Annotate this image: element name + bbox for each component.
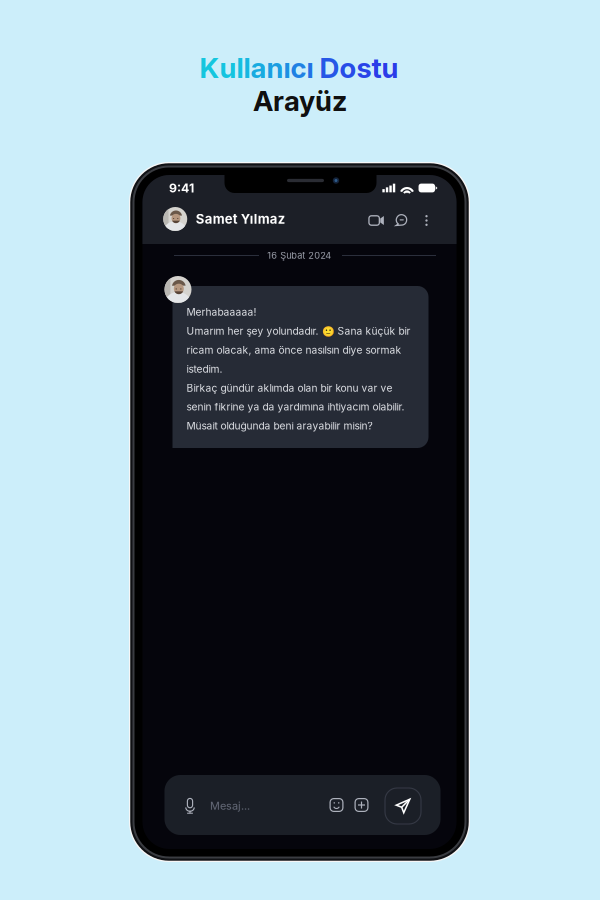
staticText: s: [356, 51, 371, 85]
staticText: K: [199, 51, 219, 85]
staticText: o: [339, 51, 356, 85]
staticText: u: [381, 51, 398, 85]
staticText: 9:41: [169, 181, 194, 195]
staticText: c: [290, 51, 306, 85]
button[interactable]: Emoji: [327, 795, 345, 815]
staticText: ı: [283, 51, 290, 85]
button[interactable]: Video call: [365, 210, 387, 230]
staticText: 16 Şubat 2024: [267, 250, 331, 261]
staticText: Samet Yılmaz: [196, 211, 285, 227]
staticText: istedim.: [186, 363, 222, 375]
staticText: Mesaj...: [210, 799, 250, 812]
staticText: l: [236, 51, 243, 85]
button[interactable]: Samet Yılmaz: [163, 201, 285, 237]
button[interactable]: More options: [418, 210, 434, 230]
staticText: n: [266, 51, 283, 85]
button[interactable]: Voice message: [179, 792, 201, 820]
staticText: Umarım her şey yolundadır. 🙂 Sana küçük …: [186, 325, 410, 337]
button[interactable]: Send: [385, 788, 421, 824]
staticText: D: [319, 51, 339, 85]
staticText: senin fikrine ya da yardımına ihtiyacım …: [186, 401, 404, 413]
button[interactable]: Attach: [352, 795, 370, 815]
button[interactable]: Messages: [391, 210, 411, 230]
staticText: ricam olacak, ama önce nasılsın diye sor…: [186, 344, 401, 356]
staticText: Merhabaaaaa!: [186, 306, 256, 318]
staticText: u: [219, 51, 236, 85]
staticText: Arayüz: [253, 84, 347, 118]
staticText: Müsait olduğunda beni arayabilir misin?: [186, 420, 372, 432]
staticText: ı: [306, 51, 313, 85]
staticText: t: [371, 51, 381, 85]
staticText: l: [243, 51, 250, 85]
staticText: Birkaç gündür aklımda olan bir konu var …: [186, 382, 392, 394]
staticText: a: [250, 51, 266, 85]
